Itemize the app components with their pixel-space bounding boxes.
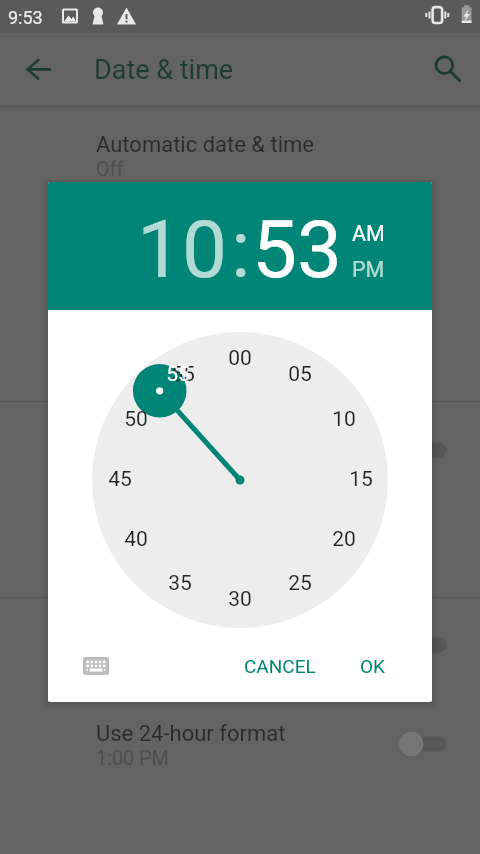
staticText: PM [352, 257, 385, 282]
staticText: 55 [166, 362, 190, 387]
staticText: Off [96, 158, 124, 181]
button[interactable]: Minutes [92, 332, 388, 628]
button[interactable]: Toggle [392, 426, 462, 474]
staticText: 9:53 [8, 7, 43, 28]
staticText: 10 [332, 407, 356, 432]
staticText: 50 [124, 407, 148, 432]
staticText: Automatic date & time [96, 132, 315, 158]
button[interactable]: 10 [137, 203, 227, 297]
button[interactable]: Search [420, 45, 468, 93]
staticText: AM [352, 221, 385, 246]
button[interactable]: Navigate up [14, 45, 62, 93]
staticText: 20 [332, 527, 356, 552]
staticText: CANCEL [244, 655, 316, 677]
staticText: 25 [288, 571, 312, 596]
button[interactable]: Toggle [392, 720, 462, 768]
staticText: Use 24-hour format [96, 721, 286, 747]
staticText: 30 [228, 587, 252, 612]
button[interactable]: Switch to text input mode [70, 646, 122, 686]
staticText: Date & time [94, 54, 234, 86]
staticText: 00 [228, 346, 252, 371]
button[interactable]: Toggle [392, 621, 462, 669]
staticText: 40 [124, 527, 148, 552]
button[interactable]: OK [348, 646, 396, 686]
staticText: 45 [108, 467, 132, 492]
staticText: 15 [349, 467, 373, 492]
staticText: 35 [168, 571, 192, 596]
button[interactable]: PM [348, 254, 392, 284]
button[interactable]: AM [348, 218, 392, 248]
button[interactable]: CANCEL [229, 646, 331, 686]
button[interactable]: 53 [252, 203, 342, 297]
button[interactable]: Use 24-hour format [0, 712, 480, 784]
staticText: 55 [171, 362, 195, 387]
staticText: 05 [288, 362, 312, 387]
button[interactable]: Automatic date & time [0, 123, 480, 195]
staticText: 1:00 PM [96, 747, 169, 770]
staticText: : [231, 203, 251, 297]
staticText: OK [360, 655, 385, 677]
